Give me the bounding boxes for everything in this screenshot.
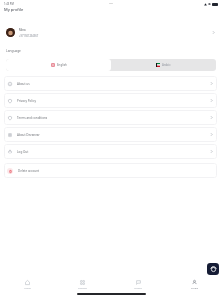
staticText: Services (78, 287, 87, 290)
button[interactable]: Services (55, 276, 110, 292)
staticText: English (57, 63, 67, 67)
staticText: Log Out (17, 150, 29, 154)
button[interactable]: Terms and conditions (4, 110, 217, 125)
staticText: Language (6, 49, 21, 53)
button[interactable]: Chat support (207, 263, 219, 275)
button[interactable]: About Devanear (4, 127, 217, 142)
staticText: Profile (191, 287, 198, 290)
button[interactable]: English (6, 59, 111, 71)
staticText: Terms and conditions (17, 116, 48, 120)
staticText: About Devanear (17, 133, 40, 137)
staticText: Arabic (162, 63, 171, 67)
button[interactable]: Mina (0, 24, 222, 41)
staticText: Privacy Policy (17, 99, 36, 103)
button[interactable]: Arabic (111, 59, 216, 71)
button[interactable]: Home (0, 276, 55, 292)
button[interactable]: Delete account (4, 163, 217, 178)
button[interactable]: Orders (110, 276, 166, 292)
staticText: +971501234567 (19, 34, 39, 38)
button[interactable]: Profile (166, 276, 222, 292)
button[interactable]: Privacy Policy (4, 93, 217, 108)
staticText: My profile (4, 7, 24, 12)
staticText: About us (17, 82, 30, 86)
button[interactable]: Log Out (4, 144, 217, 159)
staticText: Orders (134, 287, 142, 290)
staticText: Home (24, 287, 31, 290)
staticText: Mina (19, 28, 26, 32)
button[interactable]: About us (4, 76, 217, 91)
staticText: 1:43 PM (4, 2, 14, 6)
staticText: Delete account (18, 169, 40, 173)
